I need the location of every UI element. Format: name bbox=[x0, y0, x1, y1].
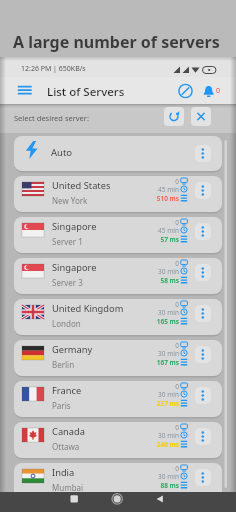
button[interactable]: India bbox=[14, 463, 222, 499]
staticText: 0 bbox=[216, 86, 221, 96]
staticText: 30 min bbox=[158, 349, 179, 357]
button[interactable] bbox=[191, 107, 211, 126]
staticText: London bbox=[52, 318, 81, 329]
button[interactable] bbox=[177, 82, 194, 100]
staticText: 30 min bbox=[158, 431, 179, 439]
staticText: 12:26 PM | 650KB/s bbox=[21, 64, 86, 74]
staticText: 0 bbox=[175, 423, 179, 431]
staticText: Germany bbox=[52, 343, 93, 356]
staticText: 165 ms bbox=[156, 317, 179, 325]
staticText: 0 bbox=[175, 300, 179, 308]
staticText: 0 bbox=[175, 464, 179, 472]
staticText: Canada bbox=[52, 425, 85, 438]
button[interactable] bbox=[195, 305, 211, 322]
button[interactable]: Auto bbox=[14, 136, 222, 171]
staticText: 510 ms bbox=[156, 194, 179, 202]
staticText: 45 min bbox=[158, 185, 179, 193]
staticText: 30 min bbox=[158, 267, 179, 275]
staticText: Server 1 bbox=[52, 236, 83, 247]
staticText: 246 ms bbox=[156, 440, 179, 448]
button[interactable] bbox=[15, 82, 34, 99]
button[interactable]: Singapore bbox=[14, 258, 222, 294]
button[interactable]: Canada bbox=[14, 422, 222, 458]
staticText: Singapore bbox=[52, 261, 97, 274]
staticText: Mumbai bbox=[52, 482, 84, 493]
staticText: United States bbox=[52, 179, 111, 192]
button[interactable] bbox=[195, 145, 211, 162]
staticText: Singapore bbox=[52, 220, 97, 233]
staticText: 45 min bbox=[158, 226, 179, 234]
staticText: A large number of servers bbox=[13, 31, 220, 53]
staticText: Select desired server: bbox=[14, 113, 89, 123]
staticText: India bbox=[52, 466, 75, 479]
staticText: 0 bbox=[175, 382, 179, 390]
button[interactable]: France bbox=[14, 381, 222, 417]
button[interactable] bbox=[151, 492, 168, 509]
staticText: Auto bbox=[51, 146, 73, 159]
staticText: France bbox=[52, 384, 82, 397]
staticText: 0 bbox=[175, 259, 179, 267]
staticText: 257 ms bbox=[156, 399, 179, 407]
staticText: 88 ms bbox=[160, 481, 179, 489]
button[interactable]: Germany bbox=[14, 340, 222, 376]
button[interactable] bbox=[195, 264, 211, 281]
staticText: 57 ms bbox=[160, 235, 179, 243]
staticText: Server 3 bbox=[52, 277, 83, 288]
staticText: New York bbox=[52, 195, 88, 206]
button[interactable] bbox=[109, 492, 126, 509]
button[interactable] bbox=[164, 107, 184, 126]
staticText: 0 bbox=[175, 218, 179, 226]
staticText: United Kingdom bbox=[52, 302, 124, 315]
staticText: List of Servers bbox=[47, 84, 125, 100]
staticText: 30 min bbox=[158, 390, 179, 398]
staticText: 0 bbox=[175, 177, 179, 185]
staticText: Ottawa bbox=[52, 441, 80, 452]
staticText: 0 bbox=[175, 341, 179, 349]
staticText: Berlin bbox=[52, 359, 75, 370]
button[interactable] bbox=[195, 428, 211, 445]
button[interactable] bbox=[201, 83, 217, 100]
staticText: 58 ms bbox=[160, 276, 179, 284]
button[interactable] bbox=[195, 182, 211, 199]
button[interactable] bbox=[66, 492, 83, 509]
staticText: 167 ms bbox=[156, 358, 179, 366]
button[interactable] bbox=[195, 387, 211, 404]
staticText: Paris bbox=[52, 400, 71, 411]
staticText: 30 min bbox=[158, 308, 179, 316]
button[interactable]: Singapore bbox=[14, 217, 222, 253]
staticText: 30 min bbox=[158, 472, 179, 480]
button[interactable] bbox=[195, 223, 211, 240]
button[interactable] bbox=[195, 346, 211, 363]
button[interactable]: United States bbox=[14, 176, 222, 212]
button[interactable]: United Kingdom bbox=[14, 299, 222, 335]
button[interactable] bbox=[195, 469, 211, 486]
